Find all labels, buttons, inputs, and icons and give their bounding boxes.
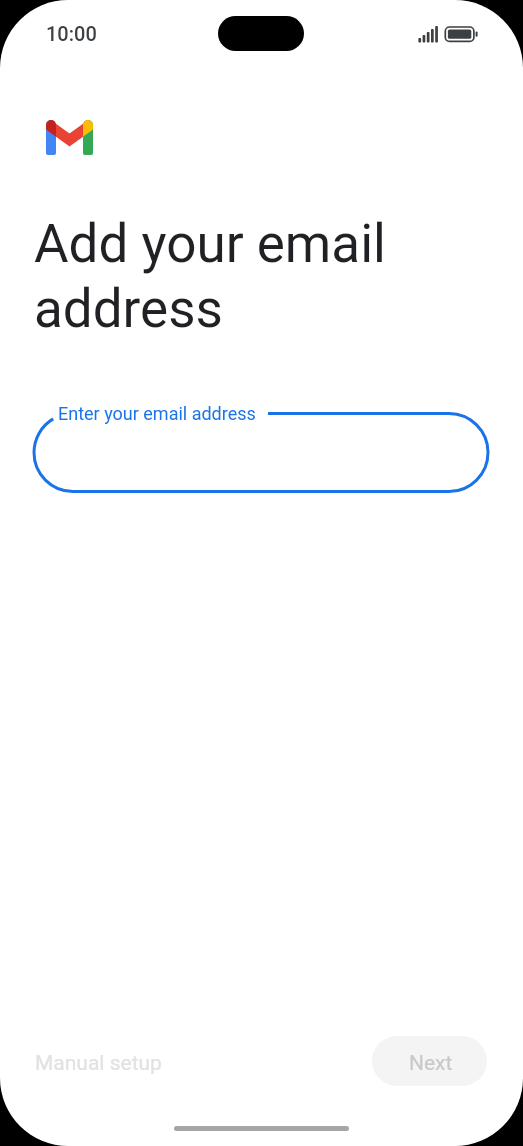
staticText: Enter your email address (58, 403, 256, 424)
button[interactable]: Next (372, 1036, 487, 1086)
staticText: Next (409, 1051, 453, 1076)
button[interactable]: Manual setup (22, 1036, 175, 1086)
other: Signal strength and battery (418, 22, 478, 42)
button[interactable]: Enter your email address (30, 398, 492, 500)
staticText: Add your email address (34, 213, 434, 340)
staticText: Manual setup (35, 1051, 162, 1076)
staticText: 10:00 (46, 22, 97, 45)
